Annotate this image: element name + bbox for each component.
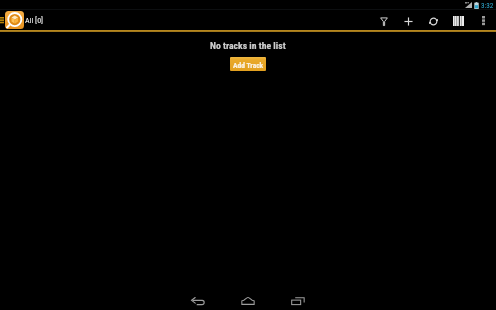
button[interactable]: Home — [236, 290, 260, 310]
staticText: All [0] — [25, 16, 44, 25]
staticText: No tracks in the list — [210, 40, 286, 51]
staticText: Add Track — [233, 61, 264, 70]
button[interactable]: Filter — [371, 11, 396, 31]
button[interactable]: Back — [186, 290, 210, 310]
button[interactable]: Add — [396, 11, 421, 31]
staticText: 3:32 — [481, 1, 494, 9]
button[interactable]: Tracks — [5, 11, 24, 29]
button[interactable]: Add Track — [230, 57, 266, 71]
button[interactable]: More options — [471, 11, 496, 31]
button[interactable]: Refresh — [421, 11, 446, 31]
button[interactable]: Scan barcode — [446, 11, 471, 31]
button[interactable]: Recents — [286, 290, 310, 310]
